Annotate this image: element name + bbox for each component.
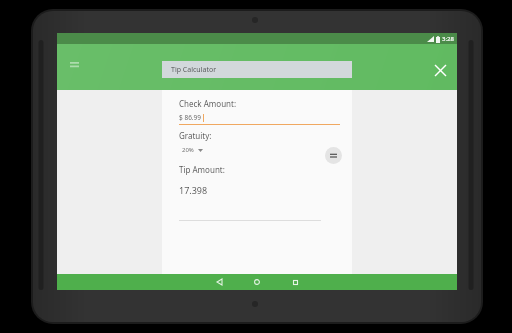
button[interactable]: Menu xyxy=(63,54,85,76)
button[interactable]: 20% xyxy=(179,145,206,155)
staticText: $ 86.99 xyxy=(179,113,202,122)
button[interactable]: Home xyxy=(246,274,268,290)
staticText: Check Amount: xyxy=(179,98,237,109)
button[interactable]: Close xyxy=(427,57,453,83)
staticText: 17.398 xyxy=(179,184,208,196)
staticText: Gratuity: xyxy=(179,130,212,141)
button[interactable]: Tip Calculator xyxy=(162,61,352,78)
button[interactable]: Calculate xyxy=(325,147,342,164)
button[interactable]: Back xyxy=(208,274,230,290)
staticText: Tip Calculator xyxy=(171,65,217,75)
staticText: 3:28 xyxy=(442,35,454,43)
staticText: Tip Amount: xyxy=(179,164,225,175)
staticText: 20% xyxy=(182,146,194,154)
button[interactable]: Recent apps xyxy=(284,274,306,290)
